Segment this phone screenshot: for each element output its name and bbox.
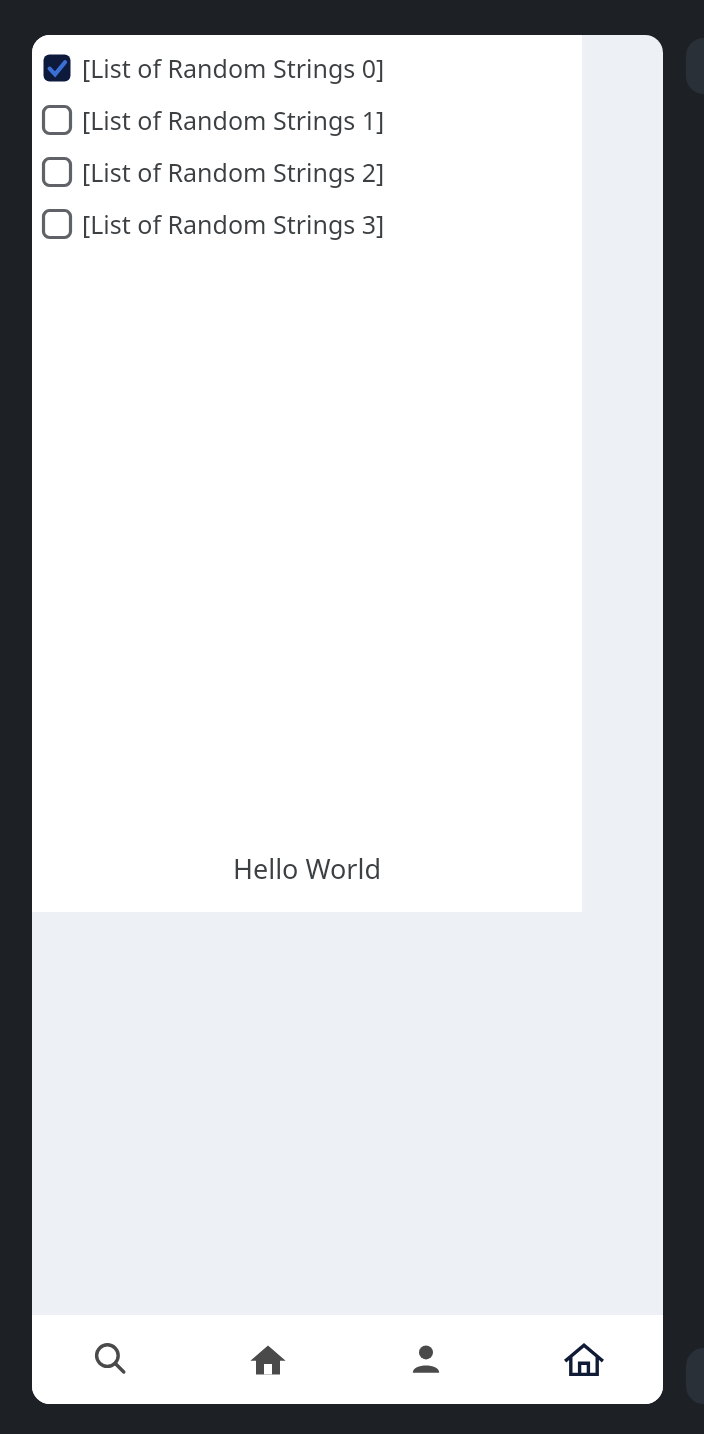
staticText: [List of Random Strings 0] xyxy=(82,51,385,85)
button[interactable]: [List of Random Strings 1] xyxy=(32,94,582,146)
button[interactable]: [List of Random Strings 2] xyxy=(32,146,582,198)
staticText: [List of Random Strings 2] xyxy=(82,155,385,189)
staticText: [List of Random Strings 1] xyxy=(82,103,385,137)
button[interactable]: [List of Random Strings 0] xyxy=(32,42,582,94)
button[interactable]: Home xyxy=(189,1315,347,1404)
staticText: [List of Random Strings 3] xyxy=(82,207,385,241)
button[interactable]: [List of Random Strings 3] xyxy=(32,198,582,250)
staticText: Hello World xyxy=(32,850,582,887)
button[interactable]: Search xyxy=(32,1315,189,1404)
button[interactable]: Profile xyxy=(347,1315,505,1404)
button[interactable]: House xyxy=(505,1315,663,1404)
